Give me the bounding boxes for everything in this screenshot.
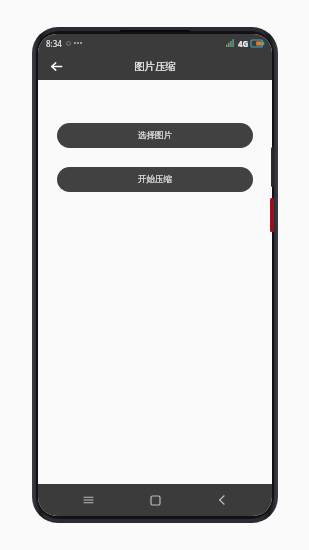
button[interactable]: Home bbox=[138, 484, 172, 516]
button[interactable]: 选择图片 bbox=[57, 123, 253, 148]
button[interactable]: Recents bbox=[71, 484, 105, 516]
staticText: 开始压缩 bbox=[138, 174, 172, 185]
staticText: 选择图片 bbox=[138, 130, 172, 141]
staticText: 图片压缩 bbox=[134, 60, 176, 73]
staticText: 8:34 bbox=[46, 38, 62, 49]
button[interactable]: Back bbox=[43, 53, 69, 79]
button[interactable]: Back bbox=[205, 484, 239, 516]
staticText: 4G bbox=[238, 38, 249, 49]
button[interactable]: 开始压缩 bbox=[57, 167, 253, 192]
